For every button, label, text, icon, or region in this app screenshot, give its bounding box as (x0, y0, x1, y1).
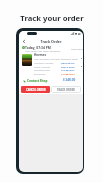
staticText: $ 248.00 (63, 78, 76, 82)
staticText: HRM-28419 (61, 61, 75, 64)
staticText: Estimated (34, 72, 46, 75)
button[interactable]: CANCEL ORDER (21, 86, 50, 93)
staticText: Order number (34, 65, 51, 68)
button[interactable]: TRACK ORDER (51, 86, 81, 93)
staticText: Contact Shop (27, 79, 48, 83)
staticText: Track your order (16, 13, 88, 23)
staticText: 14 Feb 2021 (61, 72, 75, 75)
staticText: Your order has been delivered (25, 49, 61, 52)
button[interactable]: View details (71, 47, 83, 50)
staticText: Hermes (34, 53, 47, 57)
staticText: Tracking Number (34, 61, 54, 64)
staticText: TRACK ORDER (57, 88, 75, 92)
staticText: Your package has been delivered safely (34, 57, 79, 60)
staticText: Shipping Date (34, 68, 50, 71)
staticText: CANCEL ORDER (26, 88, 46, 92)
button[interactable]: Back (21, 39, 26, 44)
button[interactable]: Contact Shop (23, 79, 48, 83)
staticText: Today, 07:34 PM (25, 45, 51, 49)
staticText: 12 Feb 2021 (61, 68, 75, 71)
staticText: Track Order (19, 39, 83, 44)
staticText: #2814-2933 (61, 65, 75, 68)
